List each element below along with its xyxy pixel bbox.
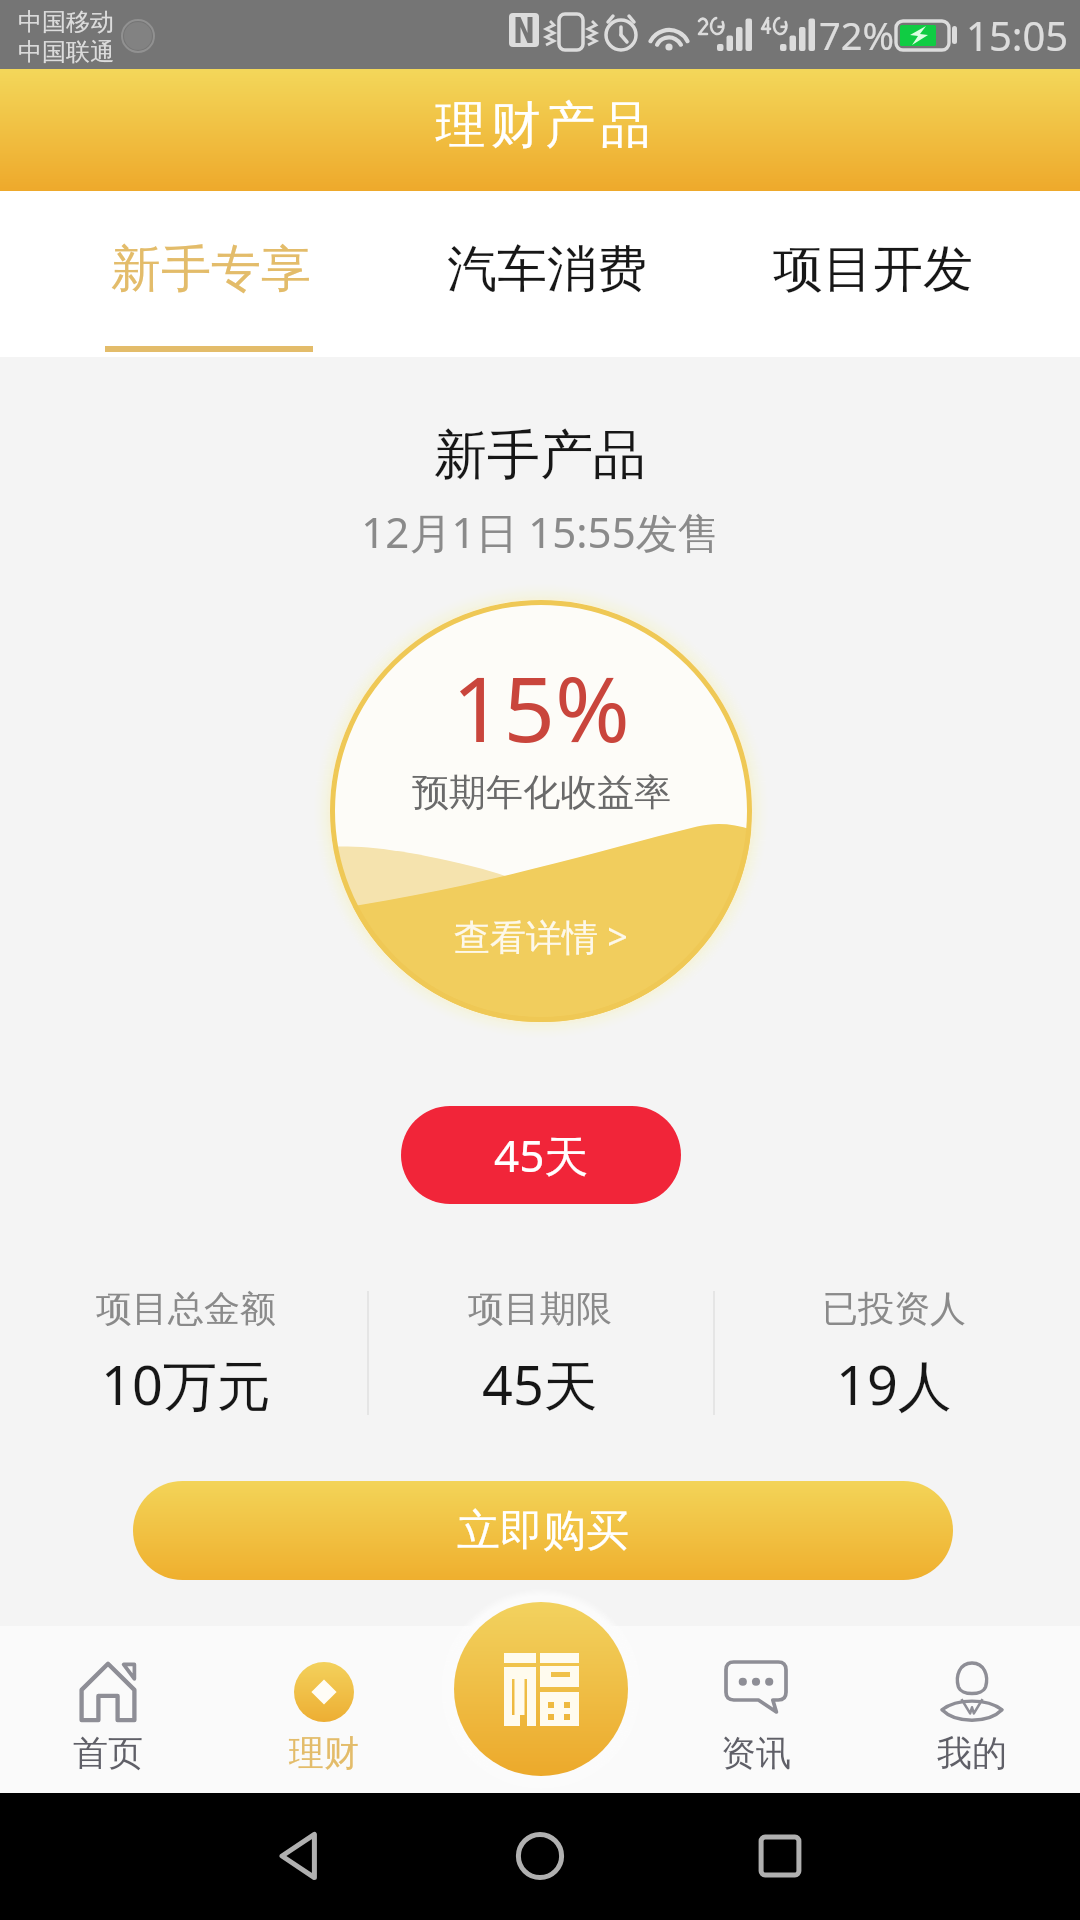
button[interactable]: 汽车消费 xyxy=(437,191,657,357)
button[interactable]: Home xyxy=(495,1811,585,1901)
staticText: 中国移动 xyxy=(18,7,114,37)
button[interactable]: Back xyxy=(255,1811,345,1901)
staticText: 已投资人 xyxy=(822,1286,966,1331)
staticText: 理财产品 xyxy=(433,94,653,157)
staticText: 预期年化收益率 xyxy=(412,769,671,816)
staticText: 理财 xyxy=(289,1731,359,1775)
staticText: 查看详情 > xyxy=(454,912,628,961)
staticText: 项目期限 xyxy=(468,1286,612,1331)
button[interactable]: 福利 xyxy=(454,1602,628,1776)
staticText: 19人 xyxy=(836,1347,952,1421)
button[interactable]: 已投资人 xyxy=(719,1286,1069,1420)
staticText: 项目总金额 xyxy=(96,1286,276,1331)
button[interactable]: 我的 xyxy=(864,1626,1080,1793)
button[interactable]: 45天 xyxy=(401,1106,681,1204)
staticText: 中国联通 xyxy=(18,37,114,67)
button[interactable]: 项目总金额 xyxy=(11,1286,361,1420)
staticText: 新手产品 xyxy=(434,422,646,489)
staticText: 10万元 xyxy=(101,1347,271,1421)
staticText: 45天 xyxy=(482,1347,598,1421)
staticText: 45天 xyxy=(494,1125,589,1185)
button[interactable]: 理财 xyxy=(216,1626,432,1793)
staticText: 72% xyxy=(819,9,895,61)
button[interactable]: 新手专享 xyxy=(101,191,321,357)
button[interactable]: 项目开发 xyxy=(763,191,983,357)
staticText: 首页 xyxy=(73,1731,143,1775)
button[interactable]: 资讯 xyxy=(648,1626,864,1793)
staticText: 项目开发 xyxy=(773,238,973,301)
staticText: 15% xyxy=(452,646,630,769)
staticText: 汽车消费 xyxy=(447,238,647,301)
staticText: 新手专享 xyxy=(111,238,311,301)
staticText: 15:05 xyxy=(966,8,1069,62)
staticText: 我的 xyxy=(937,1731,1007,1775)
button[interactable]: 项目期限 xyxy=(365,1286,715,1420)
button[interactable]: Recents xyxy=(735,1811,825,1901)
staticText: 立即购买 xyxy=(457,1504,629,1558)
button[interactable]: 首页 xyxy=(0,1626,216,1793)
staticText: 12月1日 15:55发售 xyxy=(361,503,720,560)
button[interactable]: 查看详情 > xyxy=(302,912,780,961)
button[interactable]: 立即购买 xyxy=(133,1481,953,1580)
staticText: 资讯 xyxy=(721,1731,791,1775)
